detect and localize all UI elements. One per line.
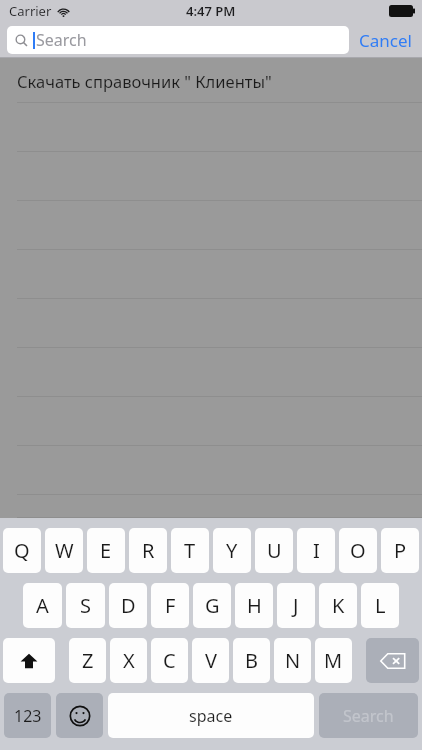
button[interactable]: V xyxy=(192,638,229,683)
button[interactable]: space xyxy=(108,693,314,738)
button[interactable]: Emoji xyxy=(56,693,103,738)
staticText: Carrier xyxy=(9,2,52,20)
button[interactable]: O xyxy=(339,528,377,573)
button[interactable]: P xyxy=(381,528,419,573)
staticText: A xyxy=(36,592,49,619)
staticText: I xyxy=(313,537,320,564)
staticText: Search xyxy=(36,29,87,51)
button[interactable]: A xyxy=(23,583,62,628)
staticText: Q xyxy=(14,537,30,564)
button[interactable]: F xyxy=(151,583,189,628)
button[interactable]: H xyxy=(235,583,273,628)
button[interactable]: 123 xyxy=(4,693,51,738)
staticText: L xyxy=(375,592,386,619)
button[interactable]: N xyxy=(274,638,311,683)
button[interactable]: B xyxy=(233,638,270,683)
button[interactable]: Скачать справочник " Клиенты" xyxy=(0,58,422,103)
button[interactable]: D xyxy=(109,583,147,628)
button[interactable]: Shift xyxy=(3,638,55,683)
staticText: H xyxy=(247,592,262,619)
staticText: R xyxy=(142,537,155,564)
staticText: J xyxy=(293,592,299,619)
button[interactable]: Q xyxy=(3,528,41,573)
button[interactable]: X xyxy=(110,638,147,683)
staticText: Search xyxy=(343,705,394,727)
staticText: X xyxy=(123,647,135,674)
staticText: K xyxy=(332,592,345,619)
staticText: P xyxy=(394,537,407,564)
button[interactable]: Cancel xyxy=(359,29,412,52)
staticText: M xyxy=(324,647,343,674)
staticText: B xyxy=(245,647,258,674)
button[interactable]: I xyxy=(297,528,335,573)
staticText: U xyxy=(267,537,282,564)
button[interactable]: G xyxy=(193,583,231,628)
button[interactable]: T xyxy=(171,528,209,573)
button[interactable]: M xyxy=(315,638,352,683)
staticText: C xyxy=(163,647,176,674)
button[interactable]: E xyxy=(87,528,125,573)
staticText: 4:47 PM xyxy=(186,2,236,20)
staticText: 123 xyxy=(14,705,42,727)
staticText: S xyxy=(80,592,91,619)
button[interactable]: W xyxy=(45,528,83,573)
button[interactable]: Z xyxy=(69,638,106,683)
staticText: N xyxy=(285,647,301,674)
staticText: D xyxy=(121,592,136,619)
staticText: F xyxy=(165,592,176,619)
button[interactable]: J xyxy=(277,583,315,628)
button[interactable]: Search xyxy=(319,693,418,738)
button[interactable]: L xyxy=(361,583,399,628)
staticText: T xyxy=(184,537,196,564)
button[interactable]: K xyxy=(319,583,357,628)
staticText: O xyxy=(350,537,366,564)
staticText: Z xyxy=(82,647,94,674)
button[interactable]: U xyxy=(255,528,293,573)
staticText: E xyxy=(100,537,112,564)
button[interactable]: R xyxy=(129,528,167,573)
staticText: V xyxy=(205,647,217,674)
button[interactable]: Search xyxy=(7,26,349,54)
button[interactable]: Y xyxy=(213,528,251,573)
staticText: W xyxy=(55,537,74,564)
button[interactable]: C xyxy=(151,638,188,683)
staticText: Y xyxy=(226,537,238,564)
button[interactable]: Backspace xyxy=(366,638,419,683)
staticText: space xyxy=(189,705,233,727)
staticText: Cancel xyxy=(359,29,412,52)
staticText: Скачать справочник " Клиенты" xyxy=(17,70,272,92)
button[interactable]: S xyxy=(66,583,105,628)
staticText: G xyxy=(205,592,220,619)
